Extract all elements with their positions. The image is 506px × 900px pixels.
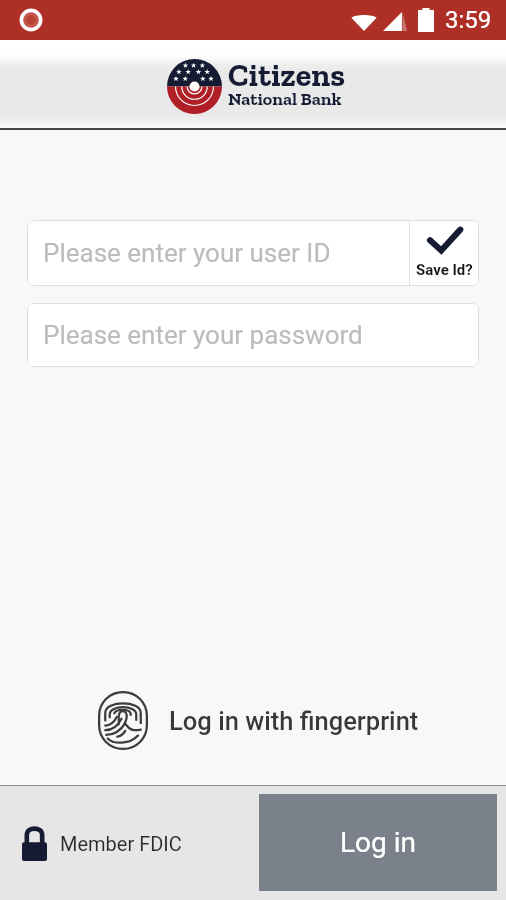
other: Save Id (428, 227, 462, 256)
staticText: Citizens (228, 56, 345, 94)
staticText: National Bank (228, 88, 342, 110)
other: Secure (22, 825, 47, 861)
button[interactable]: Secure (22, 825, 182, 861)
button[interactable]: Please enter your password (27, 303, 479, 367)
staticText: 3:59 (445, 6, 492, 34)
other: Notification (17, 6, 45, 34)
button[interactable]: Save Id (410, 220, 479, 286)
button[interactable]: Please enter your user ID (27, 220, 409, 286)
staticText: Save Id? (416, 261, 473, 279)
staticText: Member FDIC (60, 832, 182, 855)
staticText: Please enter your user ID (43, 238, 331, 268)
staticText: Log in with fingerprint (169, 706, 419, 736)
button[interactable]: Log in with fingerprint (0, 691, 506, 750)
staticText: Log in (340, 826, 416, 859)
button[interactable]: Log in (259, 794, 497, 891)
staticText: Please enter your password (43, 320, 363, 350)
